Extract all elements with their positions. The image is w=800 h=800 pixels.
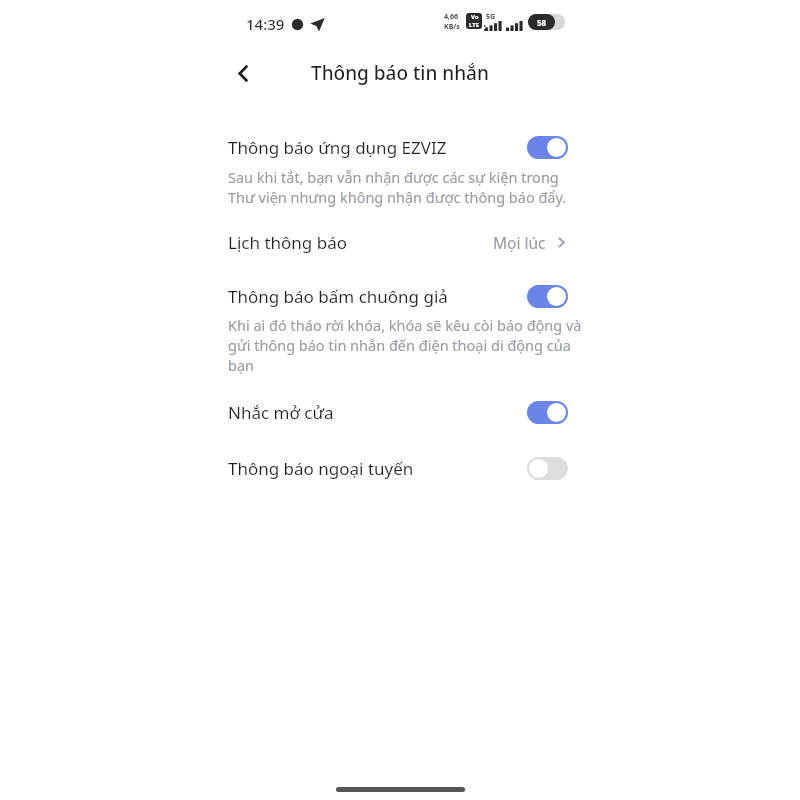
staticText: Thông báo ứng dụng EZVIZ bbox=[228, 136, 527, 159]
staticText: LTE bbox=[469, 21, 480, 29]
staticText: gửi thông báo tin nhắn đến điện thoại di… bbox=[228, 335, 571, 355]
button[interactable]: Enabled bbox=[527, 136, 568, 159]
staticText: Khi ai đó tháo rời khóa, khóa sẽ kêu còi… bbox=[228, 315, 582, 335]
staticText: Thư viện nhưng không nhận được thông báo… bbox=[228, 187, 567, 207]
button[interactable]: Enabled bbox=[527, 285, 568, 308]
button[interactable]: Thông báo ứng dụng EZVIZ bbox=[0, 127, 800, 167]
staticText: Mọi lúc bbox=[493, 232, 546, 253]
staticText: Nhắc mở cửa bbox=[228, 401, 527, 424]
staticText: bạn bbox=[228, 355, 255, 375]
button[interactable]: Disabled bbox=[527, 457, 568, 480]
button[interactable]: Lịch thông báo bbox=[0, 222, 800, 262]
staticText: 4,66 bbox=[444, 12, 459, 22]
button[interactable]: Thông báo bấm chuông giả bbox=[0, 276, 800, 316]
staticText: Thông báo bấm chuông giả bbox=[228, 285, 527, 308]
staticText: 5G bbox=[486, 12, 496, 22]
staticText: 14:39 bbox=[246, 14, 285, 34]
staticText: Thông báo tin nhắn bbox=[311, 60, 489, 86]
staticText: KB/s bbox=[444, 22, 460, 32]
staticText: Thông báo ngoại tuyến bbox=[228, 457, 527, 480]
staticText: Vo bbox=[471, 13, 479, 21]
button[interactable]: Nhắc mở cửa bbox=[0, 392, 800, 432]
staticText: 58 bbox=[537, 17, 547, 28]
staticText: Sau khi tắt, bạn vẫn nhận được các sự ki… bbox=[228, 167, 559, 187]
button[interactable]: Thông báo ngoại tuyến bbox=[0, 448, 800, 488]
button[interactable]: Enabled bbox=[527, 401, 568, 424]
staticText: Lịch thông báo bbox=[228, 231, 493, 254]
button[interactable]: Back bbox=[223, 53, 263, 93]
